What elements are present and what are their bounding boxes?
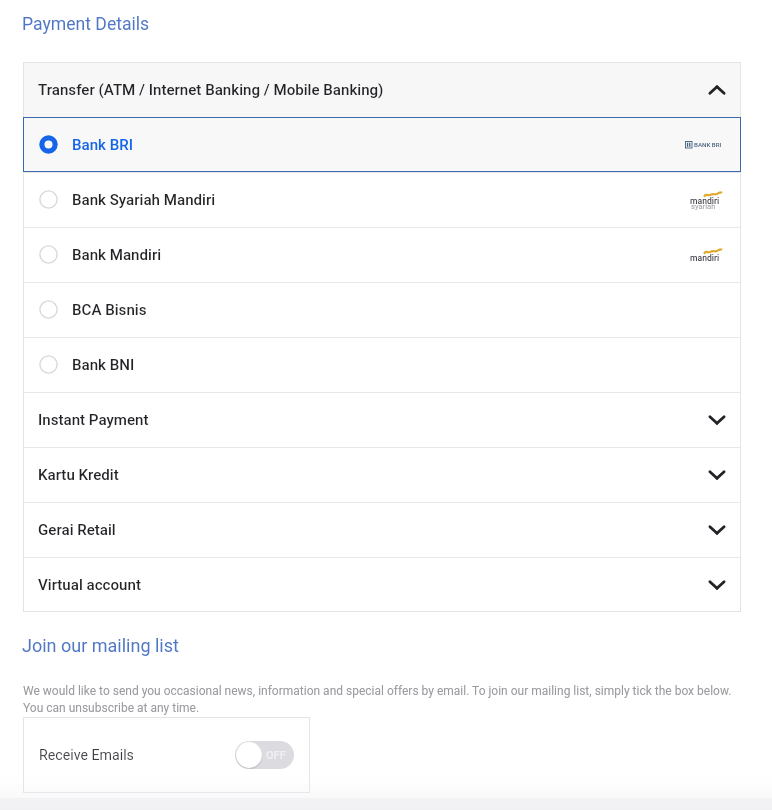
button[interactable]: Transfer (ATM / Internet Banking / Mobil… xyxy=(23,62,741,117)
button[interactable]: Instant Payment xyxy=(23,392,741,447)
button[interactable]: Expand Virtual account xyxy=(697,557,737,612)
staticText: Gerai Retail xyxy=(38,521,116,539)
staticText: Virtual account xyxy=(38,576,141,594)
button[interactable]: Expand Kartu Kredit xyxy=(697,447,737,502)
staticText: mandiri xyxy=(690,196,720,206)
button[interactable]: BCA Bisnis xyxy=(23,282,741,337)
button[interactable]: Receive emails, off xyxy=(235,741,294,769)
staticText: Payment Details xyxy=(22,14,150,35)
button[interactable]: Receive Emails xyxy=(23,717,310,793)
button[interactable]: Gerai Retail xyxy=(23,502,741,557)
button[interactable]: Collapse Transfer (ATM / Internet Bankin… xyxy=(697,62,737,117)
staticText: Bank BRI xyxy=(72,136,133,154)
button[interactable]: Expand Gerai Retail xyxy=(697,502,737,557)
staticText: mandiri xyxy=(690,253,720,263)
button[interactable]: Kartu Kredit xyxy=(23,447,741,502)
staticText: Kartu Kredit xyxy=(38,466,119,484)
button[interactable]: Bank Mandiri xyxy=(23,227,741,282)
button[interactable]: Bank BNI xyxy=(23,337,741,392)
staticText: syariah xyxy=(691,202,716,211)
staticText: Bank Syariah Mandiri xyxy=(72,191,216,209)
staticText: Join our mailing list xyxy=(22,635,179,656)
staticText: Receive Emails xyxy=(39,747,134,764)
button[interactable]: Expand Instant Payment xyxy=(697,392,737,447)
button[interactable]: Bank BRI xyxy=(23,117,741,172)
staticText: BANK BRI xyxy=(694,141,722,148)
staticText: Bank Mandiri xyxy=(72,246,162,264)
button[interactable]: Virtual account xyxy=(23,557,741,612)
staticText: Instant Payment xyxy=(38,411,149,429)
staticText: We would like to send you occasional new… xyxy=(23,684,735,715)
staticText: Transfer (ATM / Internet Banking / Mobil… xyxy=(38,81,384,99)
button[interactable]: Bank Syariah Mandiri xyxy=(23,172,741,227)
staticText: Bank BNI xyxy=(72,356,135,374)
staticText: OFF xyxy=(266,749,286,762)
staticText: BCA Bisnis xyxy=(72,301,147,319)
